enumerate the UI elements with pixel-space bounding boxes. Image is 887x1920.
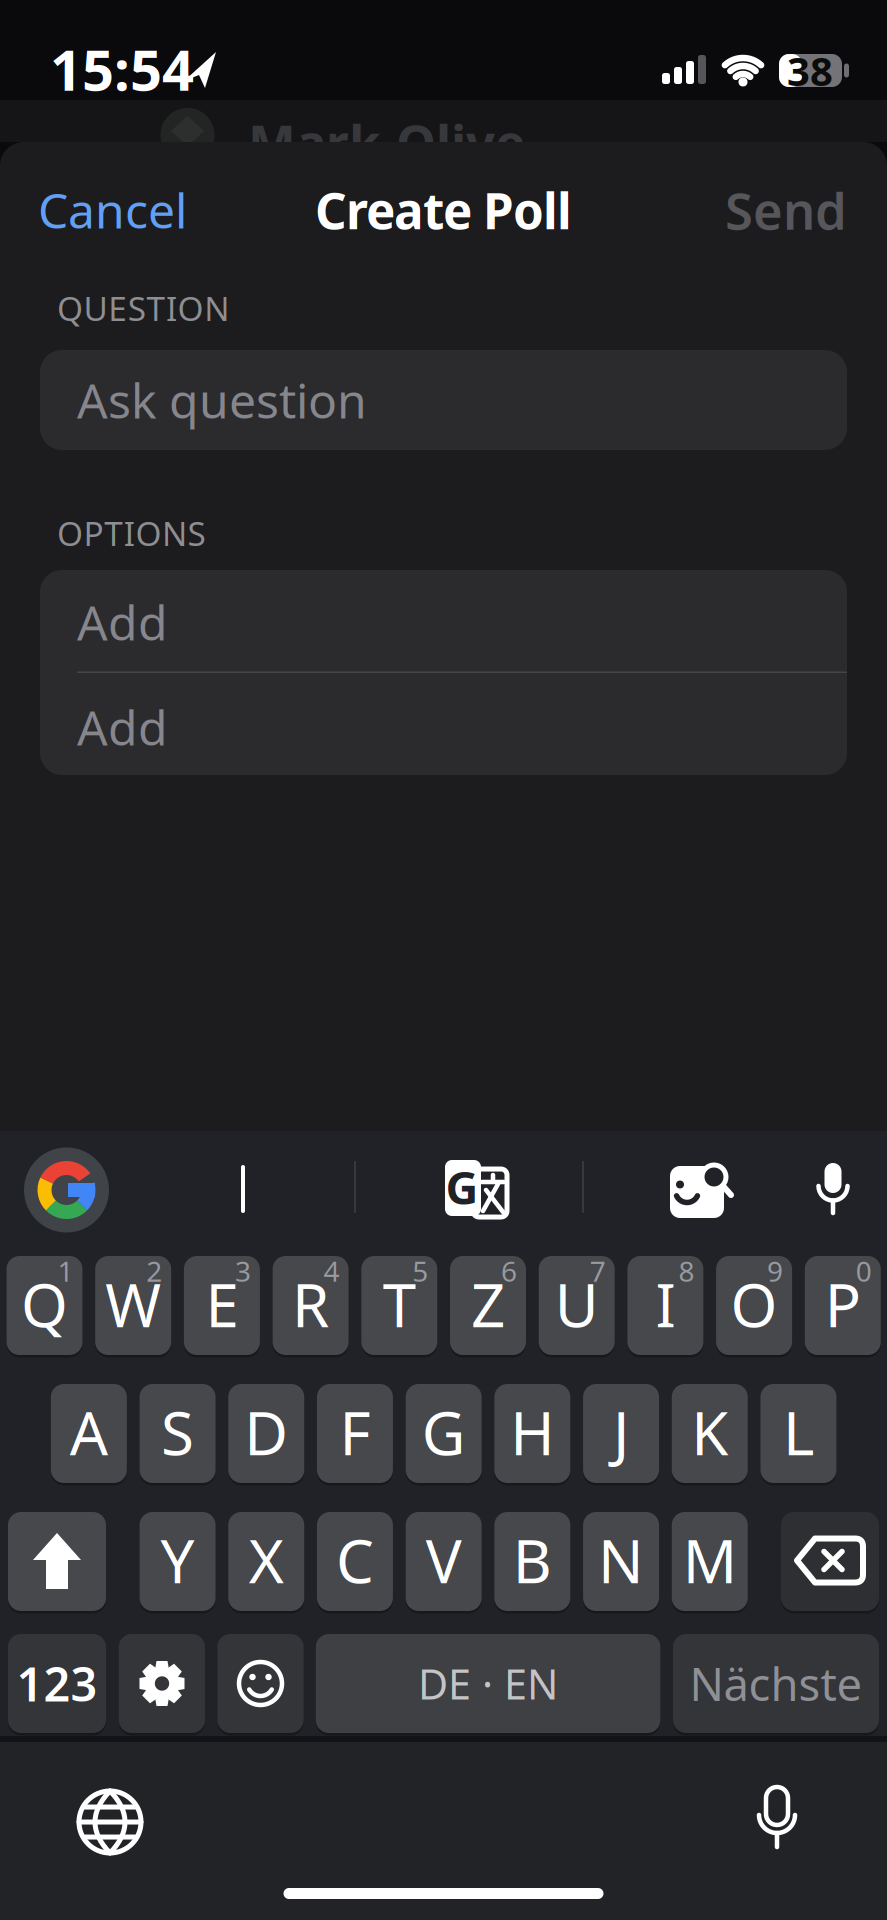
- staticText: DE · EN: [418, 1656, 558, 1711]
- staticText: Add: [77, 695, 168, 759]
- button[interactable]: Dictation: [0, 0, 887, 1920]
- button[interactable]: Delete: [0, 0, 887, 1920]
- staticText: K: [691, 1392, 728, 1472]
- button[interactable]: K: [0, 0, 887, 1920]
- button[interactable]: 123: [0, 0, 887, 1920]
- button[interactable]: T: [0, 0, 887, 1920]
- staticText: G: [422, 1392, 466, 1472]
- staticText: 4: [324, 1252, 340, 1290]
- staticText: L: [783, 1392, 814, 1472]
- button[interactable]: DE · EN: [0, 0, 887, 1920]
- button[interactable]: C: [0, 0, 887, 1920]
- button[interactable]: E: [0, 0, 887, 1920]
- button[interactable]: R: [0, 0, 887, 1920]
- button[interactable]: I: [0, 0, 887, 1920]
- button[interactable]: H: [0, 0, 887, 1920]
- staticText: F: [339, 1392, 370, 1472]
- button[interactable]: P: [0, 0, 887, 1920]
- button[interactable]: Translate: [0, 0, 887, 1920]
- button[interactable]: F: [0, 0, 887, 1920]
- staticText: 15:54: [50, 32, 194, 106]
- staticText: I: [655, 1264, 675, 1344]
- button[interactable]: Emoji: [0, 0, 887, 1920]
- button[interactable]: Voice typing: [0, 0, 887, 1920]
- button[interactable]: B: [0, 0, 887, 1920]
- button[interactable]: O: [0, 0, 887, 1920]
- staticText: 8: [678, 1252, 694, 1290]
- staticText: 1: [57, 1252, 73, 1290]
- button[interactable]: L: [0, 0, 887, 1920]
- button[interactable]: Settings: [0, 0, 887, 1920]
- button[interactable]: X: [0, 0, 887, 1920]
- staticText: R: [292, 1264, 329, 1344]
- staticText: E: [205, 1264, 238, 1344]
- button[interactable]: Send: [0, 0, 887, 1920]
- staticText: V: [426, 1520, 462, 1600]
- button[interactable]: S: [0, 0, 887, 1920]
- staticText: N: [598, 1520, 644, 1600]
- button[interactable]: N: [0, 0, 887, 1920]
- staticText: J: [613, 1392, 629, 1472]
- staticText: 5: [412, 1252, 428, 1290]
- staticText: Q: [21, 1264, 68, 1344]
- button[interactable]: W: [0, 0, 887, 1920]
- staticText: X: [249, 1520, 284, 1600]
- button[interactable]: Cancel: [0, 0, 887, 1920]
- button[interactable]: Google: [0, 0, 887, 1920]
- staticText: 6: [501, 1252, 517, 1290]
- staticText: P: [825, 1264, 861, 1344]
- staticText: 3: [235, 1252, 251, 1290]
- button[interactable]: Shift: [0, 0, 887, 1920]
- button[interactable]: G: [0, 0, 887, 1920]
- button[interactable]: V: [0, 0, 887, 1920]
- staticText: 2: [146, 1252, 162, 1290]
- staticText: Send: [725, 176, 847, 244]
- button[interactable]: Add: [0, 0, 887, 1920]
- staticText: T: [383, 1264, 416, 1344]
- staticText: 38: [787, 44, 833, 97]
- staticText: U: [555, 1264, 599, 1344]
- staticText: OPTIONS: [57, 511, 206, 555]
- staticText: Mark-Olive…: [248, 108, 568, 176]
- button[interactable]: Z: [0, 0, 887, 1920]
- staticText: 123: [16, 1652, 97, 1714]
- button[interactable]: J: [0, 0, 887, 1920]
- staticText: 7: [590, 1252, 606, 1290]
- staticText: Cancel: [38, 178, 187, 242]
- staticText: O: [731, 1264, 778, 1344]
- button[interactable]: Ask question: [0, 0, 887, 1920]
- staticText: S: [161, 1392, 194, 1472]
- button[interactable]: A: [0, 0, 887, 1920]
- staticText: QUESTION: [57, 286, 229, 330]
- staticText: 9: [767, 1252, 783, 1290]
- staticText: G: [445, 1157, 478, 1217]
- staticText: B: [513, 1520, 552, 1600]
- staticText: W: [105, 1264, 161, 1344]
- staticText: Ask question: [77, 368, 367, 432]
- button[interactable]: Add: [0, 0, 887, 1920]
- button[interactable]: Nächste: [0, 0, 887, 1920]
- staticText: C: [336, 1520, 374, 1600]
- staticText: A: [70, 1392, 108, 1472]
- staticText: Create Poll: [315, 177, 572, 243]
- staticText: 0: [856, 1252, 872, 1290]
- staticText: M: [683, 1520, 737, 1600]
- button[interactable]: Image search: [0, 0, 887, 1920]
- staticText: Y: [161, 1520, 195, 1600]
- staticText: Nächste: [689, 1653, 862, 1714]
- button[interactable]: Y: [0, 0, 887, 1920]
- button[interactable]: U: [0, 0, 887, 1920]
- button[interactable]: D: [0, 0, 887, 1920]
- button[interactable]: M: [0, 0, 887, 1920]
- staticText: H: [510, 1392, 554, 1472]
- staticText: D: [244, 1392, 288, 1472]
- button[interactable]: Next keyboard: [0, 0, 887, 1920]
- staticText: Add: [77, 590, 168, 654]
- button[interactable]: Q: [0, 0, 887, 1920]
- staticText: Z: [471, 1264, 505, 1344]
